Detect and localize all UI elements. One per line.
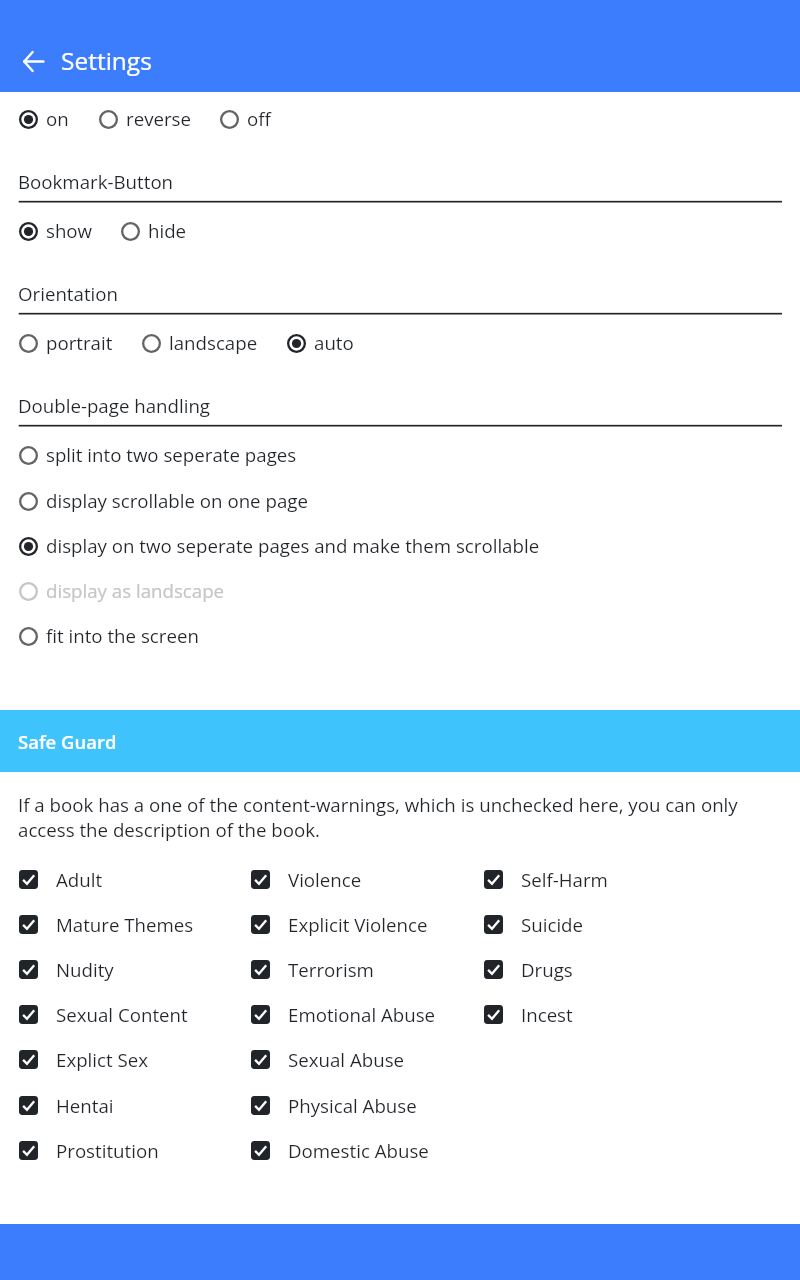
button[interactable]: show (19, 219, 93, 244)
staticText: Terrorism (288, 957, 374, 982)
staticText: Hentai (56, 1093, 114, 1118)
staticText: Physical Abuse (288, 1093, 417, 1118)
button[interactable]: portrait (19, 331, 113, 356)
staticText: Sexual Content (56, 1002, 188, 1027)
button[interactable]: Emotional Abuse (251, 1002, 436, 1027)
staticText: Incest (521, 1002, 573, 1027)
staticText: Self-Harm (521, 867, 608, 892)
button[interactable]: on (19, 107, 69, 132)
button[interactable]: Hentai (19, 1093, 114, 1118)
staticText: Double-page handling (18, 393, 211, 418)
button[interactable]: off (220, 107, 271, 132)
staticText: Mature Themes (56, 912, 194, 937)
button[interactable]: Back (11, 39, 55, 83)
staticText: Bookmark-Button (18, 169, 174, 194)
staticText: Settings (61, 44, 152, 77)
staticText: display as landscape (46, 578, 225, 603)
staticText: on (46, 106, 69, 131)
button[interactable]: Self-Harm (484, 867, 608, 892)
button[interactable]: Violence (251, 867, 362, 892)
button[interactable]: display as landscape (19, 579, 225, 604)
staticText: Violence (288, 867, 362, 892)
button[interactable]: split into two seperate pages (19, 443, 297, 468)
staticText: fit into the screen (46, 623, 199, 648)
button[interactable]: Sexual Content (19, 1002, 188, 1027)
staticText: Prostitution (56, 1138, 159, 1163)
button[interactable]: landscape (142, 331, 258, 356)
button[interactable]: Incest (484, 1002, 573, 1027)
staticText: landscape (169, 330, 258, 355)
staticText: Suicide (521, 912, 584, 937)
staticText: portrait (46, 330, 113, 355)
button[interactable]: Nudity (19, 957, 114, 982)
button[interactable]: Sexual Abuse (251, 1047, 405, 1072)
button[interactable]: hide (121, 219, 187, 244)
staticText: Sexual Abuse (288, 1047, 405, 1072)
button[interactable]: Suicide (484, 912, 584, 937)
button[interactable]: Adult (19, 867, 103, 892)
staticText: auto (314, 330, 354, 355)
button[interactable]: Mature Themes (19, 912, 194, 937)
staticText: Domestic Abuse (288, 1138, 429, 1163)
button[interactable]: Explicit Violence (251, 912, 428, 937)
button[interactable]: display scrollable on one page (19, 489, 308, 514)
staticText: Safe Guard (18, 729, 117, 754)
button[interactable]: Terrorism (251, 957, 374, 982)
staticText: hide (148, 218, 187, 243)
staticText: display on two seperate pages and make t… (46, 533, 540, 558)
button[interactable]: Physical Abuse (251, 1093, 417, 1118)
staticText: show (46, 218, 93, 243)
staticText: Explicit Violence (288, 912, 428, 937)
staticText: Nudity (56, 957, 114, 982)
button[interactable]: reverse (99, 107, 191, 132)
staticText: Explict Sex (56, 1047, 149, 1072)
staticText: display scrollable on one page (46, 488, 308, 513)
staticText: Emotional Abuse (288, 1002, 436, 1027)
staticText: split into two seperate pages (46, 442, 297, 467)
button[interactable]: auto (287, 331, 354, 356)
button[interactable]: Domestic Abuse (251, 1138, 429, 1163)
staticText: Orientation (18, 281, 118, 306)
staticText: If a book has a one of the content-warni… (18, 792, 760, 842)
staticText: off (247, 106, 271, 131)
button[interactable]: Prostitution (19, 1138, 159, 1163)
button[interactable]: fit into the screen (19, 624, 199, 649)
button[interactable]: display on two seperate pages and make t… (19, 534, 540, 559)
staticText: Adult (56, 867, 103, 892)
staticText: Drugs (521, 957, 573, 982)
button[interactable]: Explict Sex (19, 1047, 149, 1072)
button[interactable]: Drugs (484, 957, 573, 982)
staticText: reverse (126, 106, 191, 131)
